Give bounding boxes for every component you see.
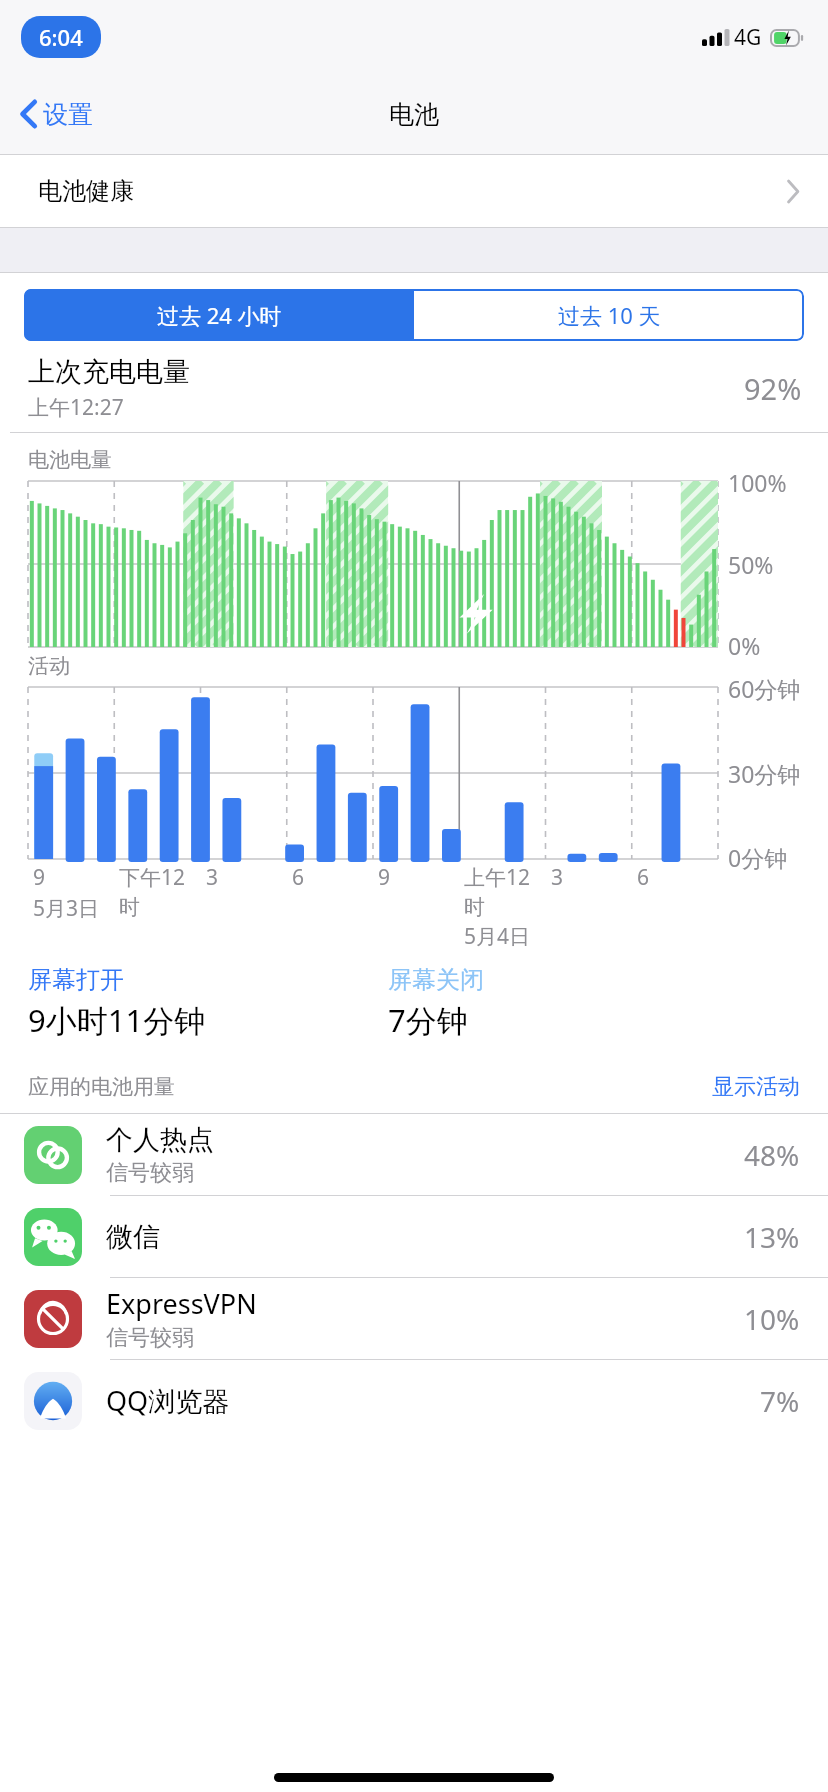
staticText: 信号较弱 <box>106 1159 194 1187</box>
staticText: 0% <box>728 630 761 661</box>
staticText: 上午12 <box>464 863 531 892</box>
button[interactable]: ExpressVPN <box>0 1278 828 1359</box>
staticText: 5月4日 <box>464 922 531 951</box>
staticText: 活动 <box>28 653 70 679</box>
staticText: 显示活动 <box>712 1073 800 1101</box>
staticText: 50% <box>728 549 774 580</box>
staticText: 个人热点 <box>106 1123 214 1157</box>
staticText: QQ浏览器 <box>106 1382 230 1419</box>
staticText: 100% <box>728 467 787 498</box>
staticText: 电池电量 <box>28 447 112 473</box>
staticText: 0分钟 <box>728 842 788 873</box>
staticText: 13% <box>744 1218 800 1256</box>
button[interactable]: 过去 24 小时 <box>24 289 414 341</box>
staticText: 6 <box>292 863 305 892</box>
staticText: 时 <box>119 894 140 920</box>
staticText: 10% <box>744 1300 800 1338</box>
staticText: 7分钟 <box>388 999 468 1041</box>
staticText: 屏幕关闭 <box>388 965 484 995</box>
staticText: 过去 24 小时 <box>157 300 282 330</box>
staticText: 5月3日 <box>33 894 100 923</box>
staticText: 设置 <box>43 99 93 130</box>
staticText: 屏幕打开 <box>28 965 124 995</box>
staticText: ExpressVPN <box>106 1285 257 1322</box>
button[interactable]: 个人热点 <box>0 1114 828 1195</box>
staticText: 9小时11分钟 <box>28 999 206 1041</box>
staticText: 信号较弱 <box>106 1324 194 1352</box>
staticText: 6 <box>637 863 650 892</box>
staticText: 上午12:27 <box>28 393 124 422</box>
staticText: 时 <box>464 894 485 920</box>
button[interactable]: 过去 10 天 <box>414 289 804 341</box>
staticText: 30分钟 <box>728 758 801 789</box>
staticText: 过去 10 天 <box>558 300 661 330</box>
staticText: 60分钟 <box>728 673 801 704</box>
staticText: 应用的电池用量 <box>28 1074 175 1100</box>
button[interactable]: QQ浏览器 <box>0 1360 828 1441</box>
button[interactable]: 电池健康 <box>0 155 828 227</box>
staticText: 9 <box>33 863 46 892</box>
staticText: 9 <box>378 863 391 892</box>
staticText: 电池健康 <box>38 176 134 206</box>
button[interactable]: 显示活动 <box>712 1073 800 1101</box>
staticText: 3 <box>551 863 564 892</box>
button[interactable]: 返回 设置 <box>14 90 99 138</box>
staticText: 微信 <box>106 1220 160 1254</box>
staticText: 92% <box>744 369 802 408</box>
staticText: 下午12 <box>119 863 186 892</box>
staticText: 4G <box>734 23 762 52</box>
staticText: 上次充电电量 <box>28 355 190 389</box>
button[interactable]: 微信 <box>0 1196 828 1277</box>
staticText: 48% <box>744 1136 800 1174</box>
staticText: 电池 <box>389 99 439 130</box>
staticText: 3 <box>206 863 219 892</box>
staticText: 6:04 <box>39 22 83 52</box>
staticText: 7% <box>760 1382 800 1420</box>
